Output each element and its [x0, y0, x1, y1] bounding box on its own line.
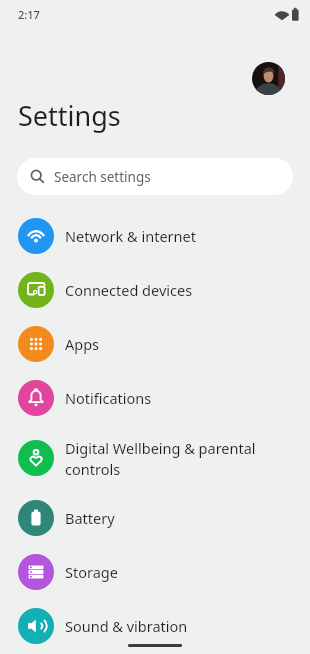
- button[interactable]: Apps: [0, 317, 310, 371]
- button[interactable]: Search settings: [17, 158, 293, 195]
- button[interactable]: Network & internet: [0, 209, 310, 263]
- staticText: Sound & vibration: [65, 616, 188, 636]
- button[interactable]: [252, 62, 285, 95]
- staticText: Search settings: [54, 168, 151, 186]
- staticText: Settings: [18, 97, 121, 134]
- button[interactable]: Digital Wellbeing & parental controls: [0, 425, 310, 491]
- button[interactable]: Storage: [0, 545, 310, 599]
- staticText: 2:17: [18, 7, 40, 22]
- button[interactable]: Battery: [0, 491, 310, 545]
- button[interactable]: Sound & vibration: [0, 599, 310, 653]
- staticText: Connected devices: [65, 280, 193, 300]
- staticText: Digital Wellbeing & parental controls: [65, 438, 256, 479]
- button[interactable]: Notifications: [0, 371, 310, 425]
- staticText: Battery: [65, 508, 115, 528]
- staticText: Apps: [65, 334, 100, 354]
- staticText: Network & internet: [65, 226, 196, 246]
- button[interactable]: Connected devices: [0, 263, 310, 317]
- staticText: Notifications: [65, 388, 152, 408]
- staticText: Storage: [65, 562, 118, 582]
